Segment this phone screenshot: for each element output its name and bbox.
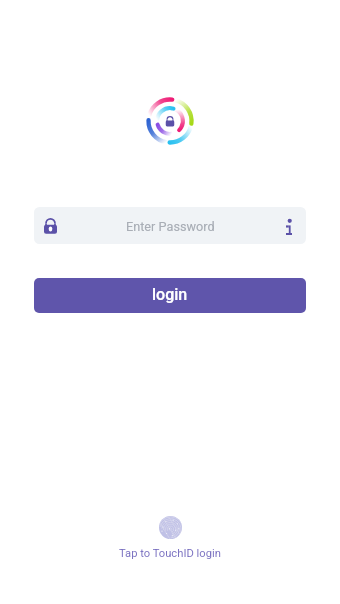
button[interactable]: Enter Password <box>34 207 306 244</box>
button[interactable]: Fingerprint <box>119 516 221 560</box>
other: Fingerprint <box>159 516 182 539</box>
button[interactable]: Password information <box>280 207 297 244</box>
button[interactable]: login <box>34 278 306 313</box>
staticText: Enter Password <box>126 219 215 234</box>
staticText: login <box>152 285 188 304</box>
other: Password information <box>286 219 292 235</box>
staticText: Tap to TouchID login <box>119 547 221 560</box>
